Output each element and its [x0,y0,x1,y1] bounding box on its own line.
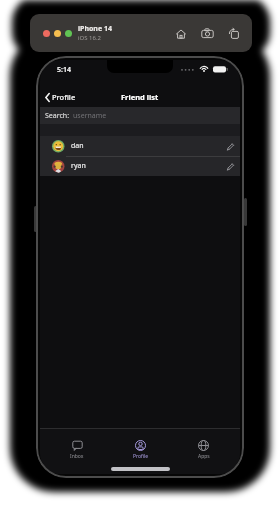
staticText: ryan [71,161,86,171]
button[interactable]: Inbox [45,440,109,460]
button[interactable]: Apps [172,440,235,460]
staticText: Profile [52,92,76,102]
button[interactable] [228,28,240,40]
staticText: Apps [198,453,210,460]
staticText: Search: [45,111,70,121]
staticText: Profile [133,453,149,460]
button[interactable] [226,142,235,151]
staticText: dan [71,141,84,151]
button[interactable] [54,30,61,37]
button[interactable]: Profile [45,92,76,102]
staticText: iOS 16.2 [78,34,101,42]
staticText: Inbox [70,453,84,460]
staticText: iPhone 14 [78,24,112,34]
button[interactable]: ryan [40,156,240,176]
button[interactable]: dan [40,136,240,156]
staticText: username [73,111,107,121]
button[interactable] [201,27,214,40]
button[interactable] [226,162,235,171]
button[interactable] [43,30,50,37]
staticText: Friend list [121,92,159,102]
button[interactable]: Profile [109,440,172,460]
button[interactable]: Search: [40,107,240,124]
button[interactable] [175,28,187,40]
button[interactable] [65,30,72,37]
staticText: 5:14 [57,65,71,75]
